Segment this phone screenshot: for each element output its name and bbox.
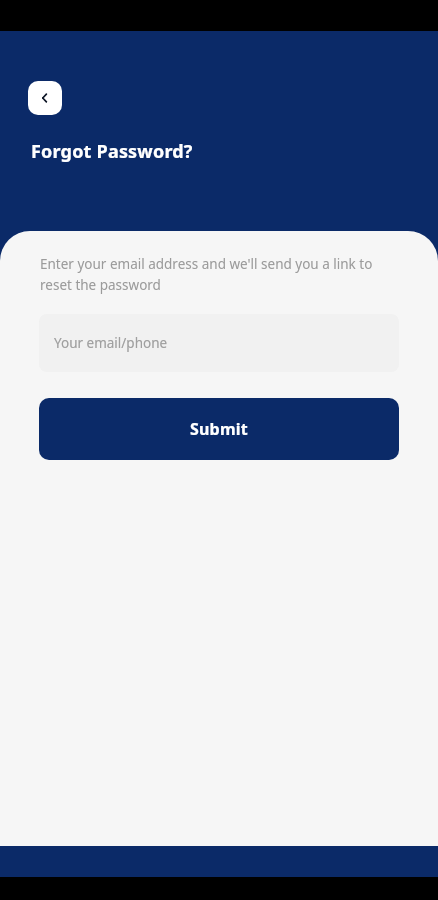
staticText: Submit	[190, 418, 248, 440]
staticText: Enter your email address and we'll send …	[40, 255, 398, 294]
staticText: Your email/phone	[54, 334, 168, 352]
button[interactable]: Your email/phone	[39, 314, 399, 372]
staticText: Forgot Password?	[31, 139, 193, 164]
button[interactable]: Submit	[39, 398, 399, 460]
button[interactable]: Back	[28, 81, 62, 115]
